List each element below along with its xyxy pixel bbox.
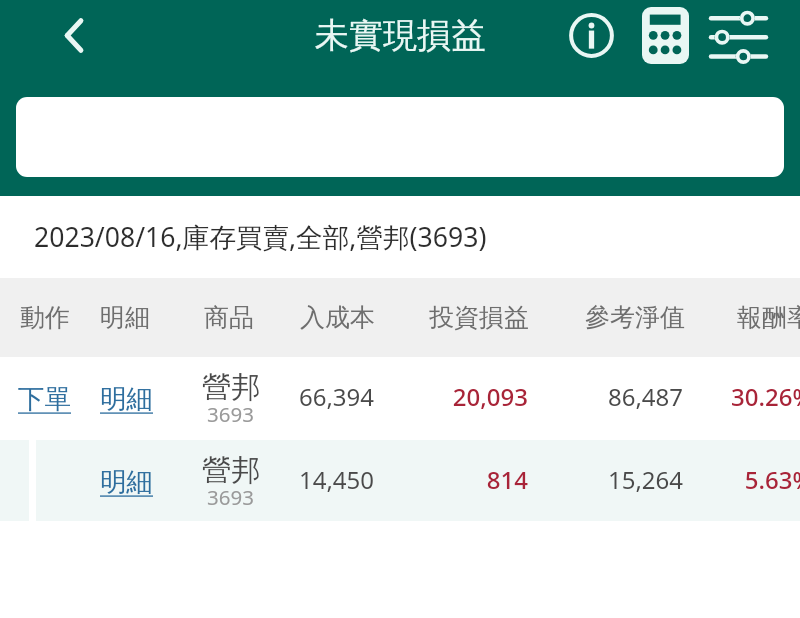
staticText: 營邦 bbox=[202, 452, 261, 489]
staticText: 明細 bbox=[100, 302, 150, 333]
staticText: 30.26% bbox=[613, 380, 800, 413]
staticText: 66,394 bbox=[174, 380, 374, 413]
staticText: 未實現損益 bbox=[0, 14, 800, 57]
button[interactable]: Settings bbox=[702, 2, 776, 68]
button[interactable]: Back bbox=[45, 7, 101, 63]
button[interactable]: 明細 bbox=[92, 375, 160, 421]
staticText: 20,093 bbox=[328, 380, 528, 413]
staticText: 3693 bbox=[207, 400, 254, 428]
staticText: 動作 bbox=[20, 302, 70, 333]
staticText: 814 bbox=[328, 463, 528, 496]
staticText: 明細 bbox=[100, 382, 153, 415]
staticText: 3693 bbox=[207, 483, 254, 511]
button[interactable]: 明細 bbox=[0, 440, 800, 521]
staticText: 14,450 bbox=[174, 463, 374, 496]
button[interactable]: 2023/08/16,庫存買賣,全部,營邦(3693) bbox=[0, 196, 800, 278]
button[interactable]: 營邦 bbox=[186, 446, 278, 516]
button[interactable]: 下單 bbox=[0, 357, 800, 440]
staticText: 15,264 bbox=[483, 463, 683, 496]
staticText: 入成本 bbox=[300, 302, 375, 333]
staticText: 商品 bbox=[204, 302, 254, 333]
staticText: 86,487 bbox=[483, 380, 683, 413]
button[interactable] bbox=[16, 97, 784, 177]
staticText: 2023/08/16,庫存買賣,全部,營邦(3693) bbox=[34, 219, 487, 255]
staticText: 報酬率 bbox=[737, 302, 800, 333]
button[interactable]: 下單 bbox=[10, 375, 78, 421]
button[interactable]: 營邦 bbox=[186, 363, 278, 433]
button[interactable]: Info bbox=[566, 10, 616, 60]
staticText: 營邦 bbox=[202, 369, 261, 406]
staticText: 5.63% bbox=[613, 463, 800, 496]
staticText: 明細 bbox=[100, 465, 153, 498]
staticText: 投資損益 bbox=[429, 302, 529, 333]
staticText: 參考淨值 bbox=[585, 302, 685, 333]
staticText: 下單 bbox=[18, 382, 71, 415]
button[interactable]: 明細 bbox=[92, 458, 160, 504]
button[interactable]: Calculator bbox=[634, 3, 696, 67]
